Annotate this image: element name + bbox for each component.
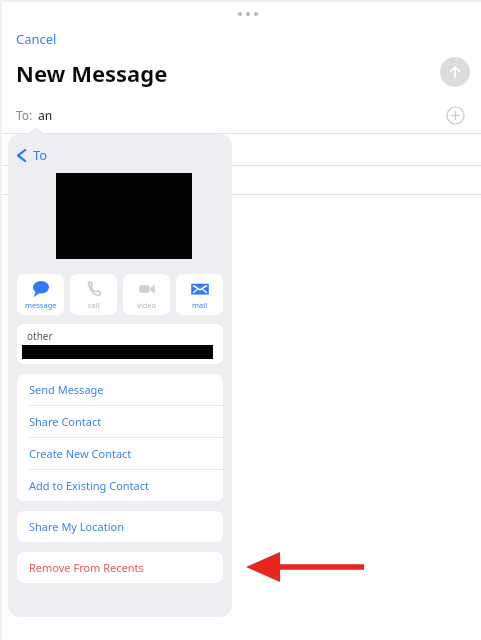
button[interactable]: video bbox=[123, 274, 170, 315]
button[interactable]: call bbox=[70, 274, 117, 315]
staticText: other bbox=[27, 329, 53, 343]
staticText: Share Contact bbox=[29, 414, 102, 429]
button[interactable]: Send bbox=[440, 57, 470, 87]
staticText: To bbox=[33, 146, 48, 164]
button[interactable]: other bbox=[17, 324, 223, 364]
button[interactable]: To: bbox=[16, 107, 53, 123]
staticText: call bbox=[88, 300, 100, 310]
button[interactable]: To bbox=[16, 146, 48, 164]
button[interactable]: Share My Location bbox=[17, 511, 223, 542]
button[interactable]: Remove From Recents bbox=[17, 552, 223, 583]
staticText: an bbox=[38, 107, 53, 123]
staticText: Remove From Recents bbox=[29, 560, 144, 575]
button[interactable]: message bbox=[17, 274, 64, 315]
button[interactable]: Cancel bbox=[8, 26, 65, 52]
staticText: To: bbox=[16, 107, 33, 123]
button[interactable]: mail bbox=[176, 274, 223, 315]
button[interactable]: Create New Contact bbox=[17, 438, 223, 469]
button[interactable]: Share Contact bbox=[17, 406, 223, 437]
button[interactable]: Add to Existing Contact bbox=[17, 470, 223, 501]
staticText: New Message bbox=[16, 58, 168, 88]
staticText: Cancel bbox=[16, 30, 57, 48]
staticText: Create New Contact bbox=[29, 446, 132, 461]
staticText: message bbox=[25, 300, 57, 310]
staticText: Send Message bbox=[29, 382, 104, 397]
staticText: video bbox=[137, 300, 157, 310]
staticText: Add to Existing Contact bbox=[29, 478, 149, 493]
button[interactable]: More bbox=[232, 8, 264, 20]
button[interactable]: Add contact bbox=[446, 106, 465, 125]
staticText: Share My Location bbox=[29, 519, 124, 534]
staticText: mail bbox=[192, 300, 208, 310]
button[interactable]: Send Message bbox=[17, 374, 223, 405]
